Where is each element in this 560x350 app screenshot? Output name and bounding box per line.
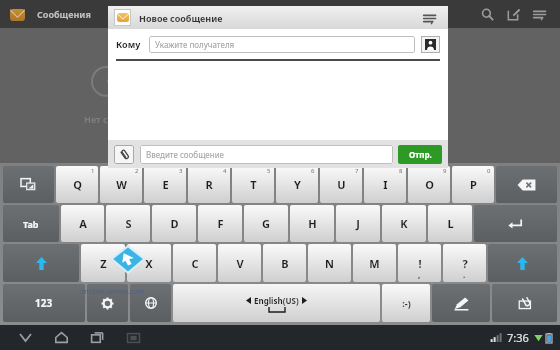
staticText: 9	[443, 167, 447, 175]
button[interactable]: E	[144, 166, 186, 203]
staticText: English(US)	[254, 295, 299, 306]
button[interactable]: Resize keyboard	[3, 166, 54, 203]
staticText: S	[125, 216, 132, 231]
staticText: D	[170, 216, 179, 231]
button[interactable]: Shift	[3, 244, 79, 282]
button[interactable]: C	[173, 244, 216, 282]
button[interactable]: J	[336, 205, 380, 242]
button[interactable]: Recent apps	[82, 325, 112, 350]
staticText: ,	[418, 269, 421, 280]
staticText: H	[308, 216, 317, 231]
staticText: Кому	[116, 38, 141, 50]
staticText: E	[162, 177, 169, 192]
staticText: 7	[355, 167, 359, 175]
button[interactable]: Q	[56, 166, 98, 203]
staticText: Q	[73, 177, 82, 192]
staticText: 2	[135, 167, 139, 175]
staticText: T	[250, 177, 257, 192]
button[interactable]: Tab	[3, 205, 59, 242]
button[interactable]: M	[353, 244, 396, 282]
button[interactable]: 123	[3, 284, 85, 322]
button[interactable]: More options	[418, 7, 440, 29]
button[interactable]: T	[232, 166, 274, 203]
staticText: Отпр.	[409, 149, 432, 160]
staticText: V	[236, 256, 244, 271]
button[interactable]: U	[320, 166, 362, 203]
button[interactable]: Attach	[114, 145, 134, 164]
staticText: P	[470, 177, 477, 192]
button[interactable]: V	[218, 244, 261, 282]
button[interactable]: Y	[276, 166, 318, 203]
staticText: 0	[487, 167, 491, 175]
button[interactable]: Enter	[474, 205, 557, 242]
button[interactable]: Change language	[130, 284, 171, 322]
button[interactable]: Укажите получателя	[149, 36, 415, 53]
button[interactable]: N	[308, 244, 351, 282]
button[interactable]: ?	[443, 244, 486, 282]
staticText: .	[463, 269, 466, 280]
button[interactable]: S	[106, 205, 150, 242]
staticText: !	[418, 256, 422, 271]
staticText: 8	[399, 167, 403, 175]
button[interactable]: !	[398, 244, 441, 282]
button[interactable]: Choose contact	[421, 36, 440, 53]
button[interactable]: Screenshot	[118, 325, 148, 350]
staticText: G	[262, 216, 270, 231]
staticText: :-)	[402, 297, 411, 309]
button[interactable]	[8, 5, 27, 24]
staticText: 4	[223, 167, 227, 175]
staticText: 5	[267, 167, 271, 175]
button[interactable]: A	[61, 205, 104, 242]
staticText: Tab	[23, 218, 39, 230]
staticText: J	[356, 216, 360, 231]
staticText: Новое сообщение	[139, 12, 223, 24]
staticText: N	[325, 256, 334, 271]
button[interactable]: P	[452, 166, 494, 203]
button[interactable]: K	[382, 205, 426, 242]
staticText: R	[205, 177, 213, 192]
button[interactable]: Shift	[488, 244, 557, 282]
staticText: Y	[294, 177, 301, 192]
staticText: 7:36	[507, 330, 529, 345]
button[interactable]: H	[290, 205, 334, 242]
button[interactable]: O	[408, 166, 450, 203]
button[interactable]: L	[428, 205, 472, 242]
staticText: X	[145, 256, 153, 271]
button[interactable]: Введите сообщение	[140, 145, 393, 164]
button[interactable]: Отпр.	[398, 145, 442, 164]
button[interactable]: B	[263, 244, 306, 282]
staticText: K	[400, 216, 408, 231]
button[interactable]: Handwriting	[432, 284, 490, 322]
button[interactable]: Home	[46, 325, 76, 350]
staticText: A	[79, 216, 87, 231]
button[interactable]: Search	[474, 1, 500, 27]
button[interactable]: :-)	[382, 284, 430, 322]
button[interactable]: Clipboard	[492, 284, 557, 322]
staticText: Z	[100, 256, 107, 271]
button[interactable]: X	[127, 244, 171, 282]
staticText: L	[447, 216, 454, 231]
staticText: 6	[311, 167, 315, 175]
button[interactable]: Back	[10, 325, 40, 350]
button[interactable]: Keyboard settings	[87, 284, 128, 322]
button[interactable]: New message	[500, 1, 526, 27]
staticText: F	[217, 216, 224, 231]
button[interactable]: W	[100, 166, 142, 203]
staticText: Укажите получателя	[155, 39, 235, 50]
staticText: Нет сообщений	[84, 113, 157, 125]
staticText: B	[281, 256, 289, 271]
button[interactable]: More options	[526, 1, 552, 27]
button[interactable]: D	[152, 205, 196, 242]
staticText: I	[383, 177, 388, 192]
staticText: Введите сообщение	[146, 149, 225, 160]
button[interactable]: G	[244, 205, 288, 242]
button[interactable]: R	[188, 166, 230, 203]
button[interactable]: I	[364, 166, 406, 203]
button[interactable]: Space	[173, 284, 380, 322]
staticText: O	[425, 177, 434, 192]
staticText: Сообщения	[37, 8, 91, 20]
button[interactable]: F	[198, 205, 242, 242]
staticText: 3	[179, 167, 183, 175]
button[interactable]: Z	[81, 244, 125, 282]
button[interactable]: Backspace	[496, 166, 557, 203]
